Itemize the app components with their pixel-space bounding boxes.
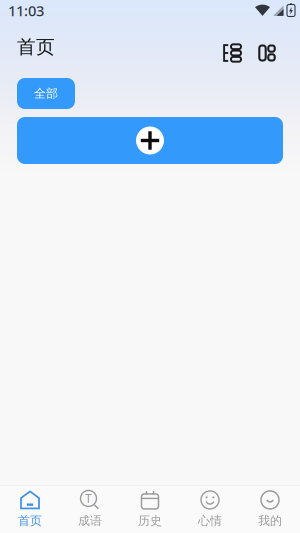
button[interactable]: 列表视图	[217, 38, 247, 68]
staticText: 首页	[18, 513, 42, 528]
button[interactable]: 历史	[120, 485, 180, 533]
staticText: T	[85, 490, 92, 506]
staticText: 历史	[138, 513, 162, 528]
staticText: 心情	[198, 513, 222, 528]
staticText: 首页	[17, 35, 55, 58]
button[interactable]: 心情	[180, 485, 240, 533]
button[interactable]: 全部	[17, 78, 75, 109]
button[interactable]: 新增记录	[17, 117, 283, 164]
staticText: 11:03	[8, 1, 44, 20]
staticText: 成语	[78, 513, 102, 528]
staticText: 全部	[34, 86, 58, 101]
button[interactable]: 首页	[0, 485, 60, 533]
staticText: 我的	[258, 513, 282, 528]
button[interactable]: 我的	[240, 485, 300, 533]
button[interactable]: T	[60, 485, 120, 533]
button[interactable]: 网格视图	[252, 38, 282, 68]
